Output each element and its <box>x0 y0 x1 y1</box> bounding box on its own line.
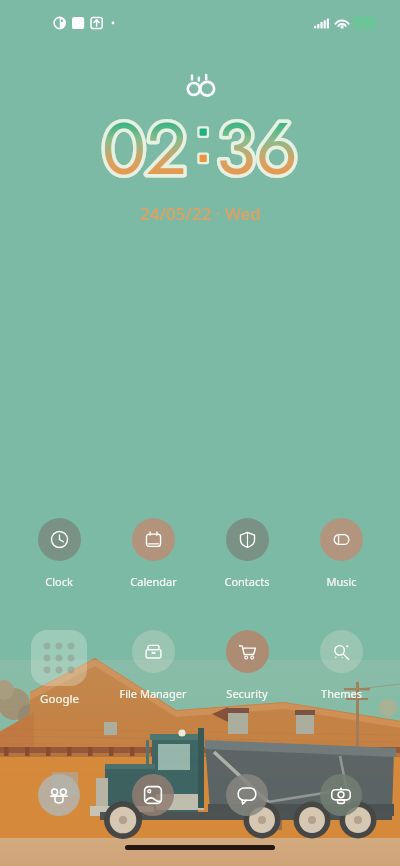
staticText: Google <box>40 691 79 707</box>
button[interactable]: Messages <box>226 774 268 816</box>
button[interactable]: Calendar <box>106 518 200 589</box>
button[interactable]: Gallery <box>132 774 174 816</box>
button[interactable]: Themes <box>294 630 388 701</box>
button[interactable]: Google <box>12 630 106 707</box>
staticText: 02 <box>102 96 188 201</box>
staticText: 36 <box>216 96 298 201</box>
staticText: 02 <box>102 96 188 201</box>
staticText: Music <box>326 574 357 589</box>
staticText: 100 <box>357 17 370 27</box>
staticText: Security <box>226 686 268 701</box>
staticText: Themes <box>321 686 362 701</box>
button[interactable]: File Manager <box>106 630 200 701</box>
button[interactable]: Phone <box>38 774 80 816</box>
button[interactable]: Camera <box>320 774 362 816</box>
staticText: Contacts <box>224 574 270 589</box>
staticText: Clock <box>45 574 73 589</box>
staticText: File Manager <box>119 686 187 701</box>
button[interactable]: Clock <box>12 518 106 589</box>
button[interactable]: Contacts <box>200 518 294 589</box>
button[interactable]: Security <box>200 630 294 701</box>
staticText: 24/05/22 · Wed <box>140 202 261 225</box>
staticText: Calendar <box>130 574 177 589</box>
button[interactable]: Music <box>294 518 388 589</box>
staticText: 36 <box>216 96 298 201</box>
